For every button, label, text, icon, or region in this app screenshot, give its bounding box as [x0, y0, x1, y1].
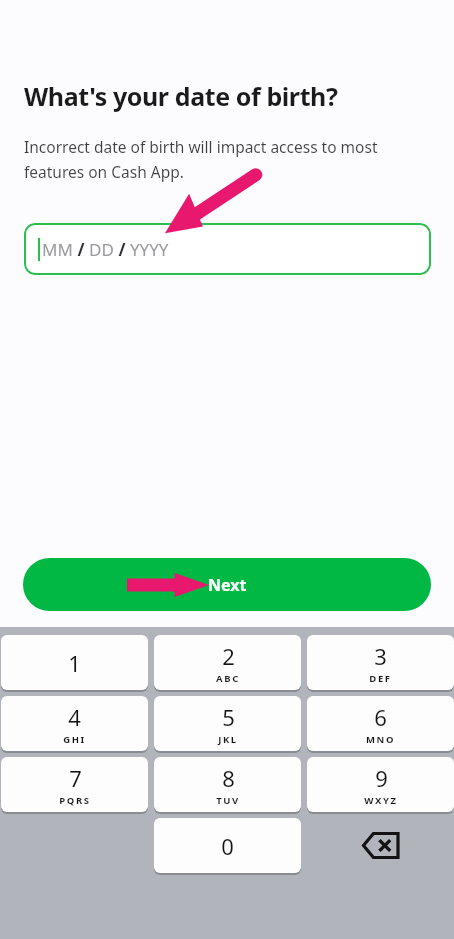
button[interactable]: 3	[307, 635, 454, 690]
button[interactable]: 6	[307, 696, 454, 751]
staticText: 4	[68, 702, 81, 732]
staticText: Next	[208, 574, 247, 596]
staticText: 6	[374, 702, 387, 732]
button[interactable]: 8	[154, 757, 301, 812]
button[interactable]: Backspace	[307, 818, 454, 873]
staticText: 3	[374, 641, 387, 671]
staticText: WXYZ	[364, 794, 398, 807]
button[interactable]: 1	[1, 635, 148, 690]
button[interactable]: 7	[1, 757, 148, 812]
staticText: GHI	[63, 733, 86, 746]
button[interactable]: 9	[307, 757, 454, 812]
staticText: 2	[222, 641, 235, 671]
staticText: /	[114, 238, 130, 261]
button[interactable]: MM	[24, 223, 431, 275]
staticText: What's your date of birth?	[24, 79, 338, 113]
button[interactable]: 4	[1, 696, 148, 751]
staticText: 5	[222, 702, 235, 732]
staticText: /	[73, 238, 89, 261]
staticText: YYYY	[130, 238, 169, 261]
button[interactable]: 0	[154, 818, 301, 873]
staticText: MNO	[366, 733, 395, 746]
staticText: DD	[89, 238, 114, 261]
staticText: ABC	[216, 672, 240, 685]
staticText: TUV	[216, 794, 240, 807]
staticText: 9	[375, 763, 388, 793]
staticText: 7	[69, 763, 82, 793]
staticText: 1	[68, 648, 81, 678]
button[interactable]: 2	[154, 635, 301, 690]
staticText: JKL	[218, 733, 238, 746]
staticText: Incorrect date of birth will impact acce…	[24, 136, 424, 182]
button[interactable]: 5	[154, 696, 301, 751]
staticText: 0	[221, 831, 234, 861]
staticText: DEF	[369, 672, 392, 685]
staticText: MM	[42, 238, 73, 261]
button[interactable]: Next	[23, 558, 431, 611]
staticText: PQRS	[59, 794, 91, 807]
staticText: 8	[222, 763, 235, 793]
